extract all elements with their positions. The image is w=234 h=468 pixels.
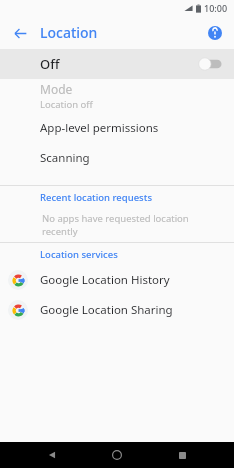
- button[interactable]: Home: [104, 442, 130, 468]
- button[interactable]: Back: [5, 18, 35, 48]
- button[interactable]: Back: [39, 442, 65, 468]
- staticText: Recent location requests: [40, 191, 152, 204]
- staticText: 10:00: [204, 2, 228, 14]
- staticText: Mode: [40, 81, 73, 97]
- button[interactable]: Help: [201, 19, 229, 47]
- button[interactable]: Off: [0, 49, 234, 79]
- staticText: Google Location Sharing: [40, 302, 173, 318]
- button[interactable]: Google Location History: [0, 265, 234, 295]
- button[interactable]: Recents: [169, 442, 195, 468]
- staticText: No apps have requested location recently: [42, 212, 222, 238]
- button[interactable]: App-level permissions: [0, 113, 234, 143]
- staticText: App-level permissions: [40, 120, 159, 136]
- staticText: Location services: [40, 248, 118, 261]
- staticText: Location: [40, 23, 98, 42]
- staticText: Google Location History: [40, 272, 170, 288]
- button[interactable]: Mode: [0, 79, 234, 113]
- button[interactable]: Google Location Sharing: [0, 295, 234, 325]
- staticText: Location off: [40, 98, 93, 111]
- button[interactable]: Scanning: [0, 143, 234, 173]
- staticText: Off: [40, 55, 198, 73]
- staticText: Scanning: [40, 150, 90, 166]
